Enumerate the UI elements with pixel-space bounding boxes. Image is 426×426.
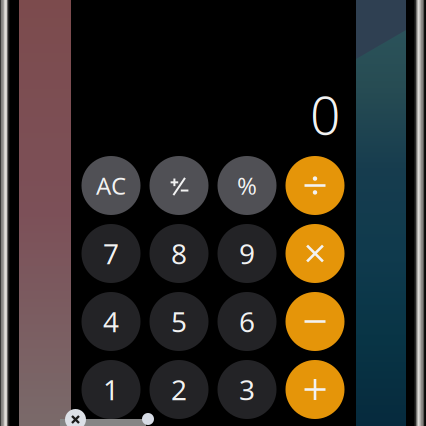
staticText: 5 xyxy=(171,303,187,340)
staticText: 9 xyxy=(239,235,255,272)
button[interactable]: Add xyxy=(285,360,344,419)
button[interactable]: One xyxy=(81,360,140,419)
staticText: 0 xyxy=(310,79,340,149)
staticText: 2 xyxy=(171,371,187,408)
button[interactable]: Two xyxy=(149,360,208,419)
staticText: 6 xyxy=(239,303,255,340)
staticText: 1 xyxy=(103,371,119,408)
button[interactable]: Subtract xyxy=(285,292,344,351)
button[interactable]: Plus minus xyxy=(149,156,208,215)
button[interactable]: Three xyxy=(217,360,276,419)
button[interactable]: Four xyxy=(81,292,140,351)
staticText: 8 xyxy=(171,235,187,272)
button[interactable]: Six xyxy=(217,292,276,351)
button[interactable]: Close xyxy=(65,409,86,426)
button[interactable]: Multiply xyxy=(285,224,344,283)
button[interactable]: Eight xyxy=(149,224,208,283)
staticText: AC xyxy=(96,170,126,201)
button[interactable]: All clear xyxy=(81,156,140,215)
staticText: % xyxy=(237,170,257,201)
staticText: 7 xyxy=(103,235,119,272)
button[interactable]: Seven xyxy=(81,224,140,283)
button[interactable]: Nine xyxy=(217,224,276,283)
staticText: 3 xyxy=(239,371,255,408)
staticText: 4 xyxy=(103,303,119,340)
button[interactable]: Percent xyxy=(217,156,276,215)
button[interactable]: Five xyxy=(149,292,208,351)
button[interactable]: Divide xyxy=(285,156,344,215)
